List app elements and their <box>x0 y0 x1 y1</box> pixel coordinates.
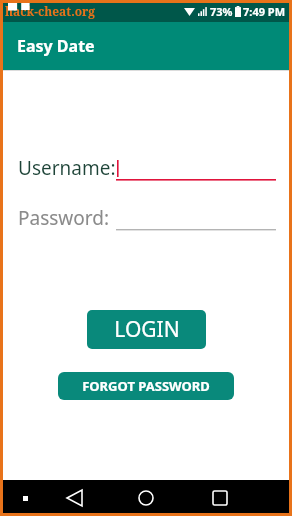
button[interactable]: Username: <box>18 155 276 181</box>
staticText: Password: <box>18 205 110 231</box>
staticText: 73% <box>210 4 233 19</box>
button[interactable]: FORGOT PASSWORD <box>58 372 234 400</box>
staticText: LOGIN <box>114 315 180 344</box>
button[interactable]: Back <box>58 482 90 514</box>
button[interactable]: IME switcher <box>16 489 34 507</box>
button[interactable]: Recent apps <box>204 482 236 514</box>
staticText: FORGOT PASSWORD <box>82 377 210 395</box>
staticText: Username: <box>18 155 116 181</box>
staticText: 7:49 PM <box>243 4 286 19</box>
button[interactable]: Home <box>130 482 162 514</box>
button[interactable]: Password: <box>18 205 276 231</box>
staticText: hack-cheat.org <box>5 3 96 19</box>
button[interactable]: LOGIN <box>87 310 206 349</box>
staticText: Easy Date <box>17 35 95 57</box>
